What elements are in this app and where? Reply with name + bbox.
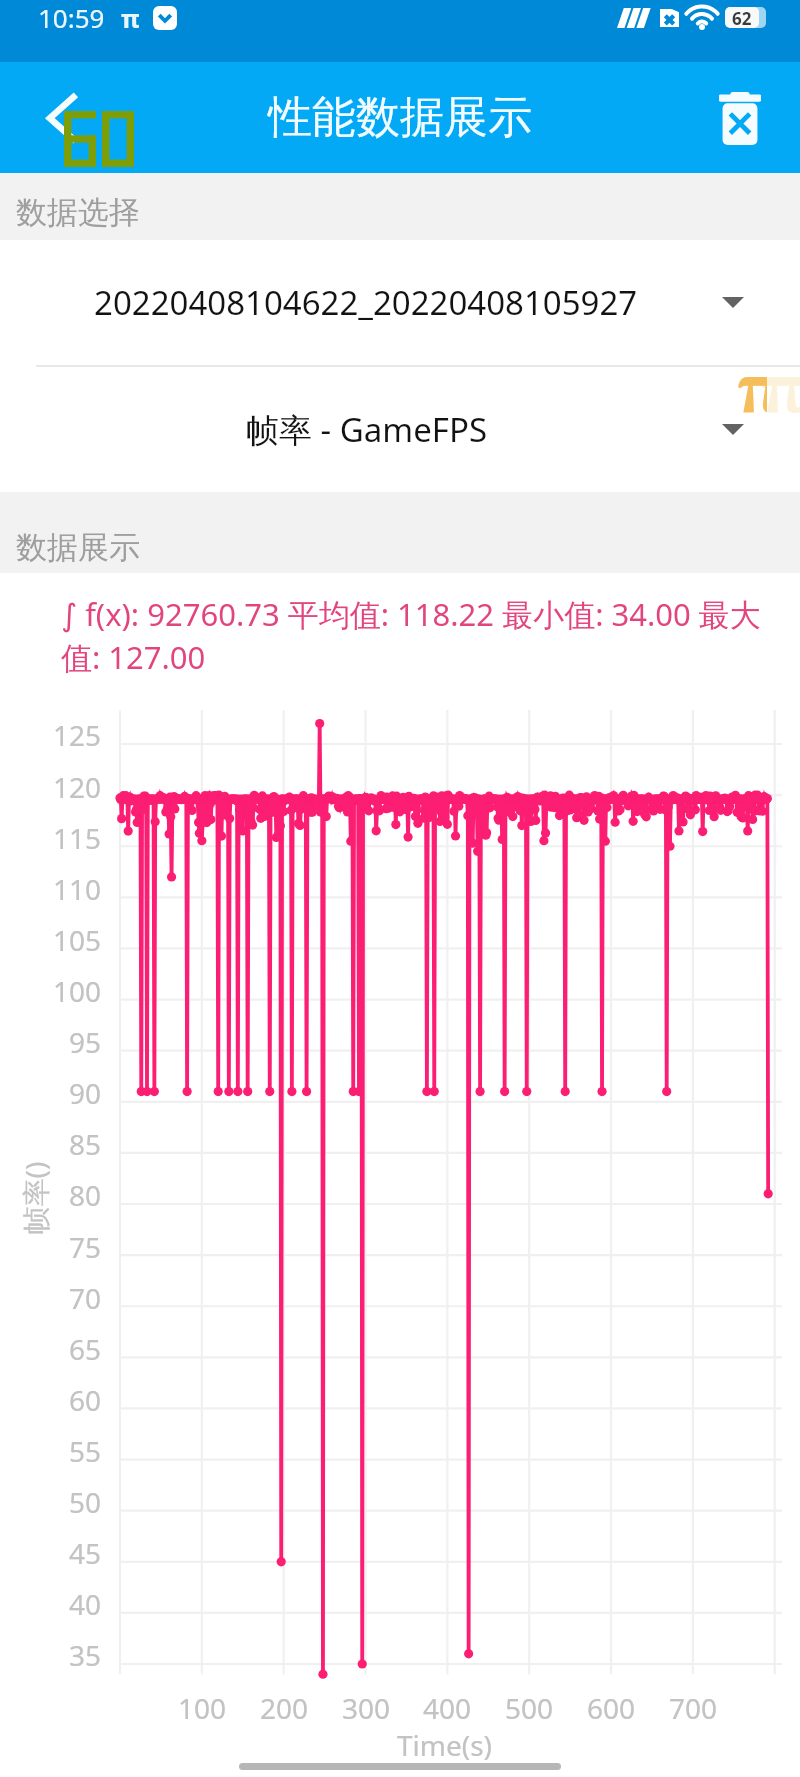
button[interactable]: Delete [700,78,780,158]
staticText: 115 [53,819,102,857]
staticText: 600 [587,1689,636,1727]
button[interactable]: 20220408104622_20220408105927 [0,240,800,365]
staticText: 700 [669,1689,718,1727]
staticText: 数据选择 [16,193,140,232]
staticText: 65 [69,1330,102,1368]
staticText: Time(s) [397,1726,492,1764]
staticText: π [761,341,800,431]
staticText: 62 [732,7,752,28]
staticText: 400 [423,1689,472,1727]
staticText: 55 [69,1432,102,1470]
button[interactable]: Back [10,73,100,163]
staticText: π [121,1,140,35]
button[interactable]: 帧率 - GameFPS [0,367,800,492]
staticText: 60 [69,1381,102,1419]
staticText: 性能数据展示 [268,90,532,145]
staticText: 10:59 [38,0,105,35]
staticText: 45 [69,1534,102,1572]
staticText: 125 [53,716,102,754]
staticText: 35 [69,1636,102,1674]
staticText: 100 [53,972,102,1010]
staticText: 100 [178,1689,227,1727]
staticText: 500 [505,1689,554,1727]
staticText: 20220408104622_20220408105927 [94,280,638,325]
staticText: 40 [69,1585,102,1623]
staticText: 300 [342,1689,391,1727]
staticText: 200 [260,1689,309,1727]
staticText: 90 [69,1074,102,1112]
staticText: 70 [69,1279,102,1317]
staticText: ∫ f(x): 92760.73 平均值: 118.22 最小值: 34.00 … [61,593,781,678]
staticText: 120 [53,768,102,806]
staticText: 95 [69,1023,102,1061]
staticText: 50 [69,1483,102,1521]
staticText: 105 [53,921,102,959]
staticText: 帧率() [15,1161,53,1234]
staticText: π [737,341,767,431]
staticText: 110 [53,870,102,908]
staticText: 75 [69,1228,102,1266]
staticText: 80 [69,1176,102,1214]
staticText: 数据展示 [16,528,140,567]
staticText: 帧率 - GameFPS [246,407,487,452]
staticText: 85 [69,1125,102,1163]
